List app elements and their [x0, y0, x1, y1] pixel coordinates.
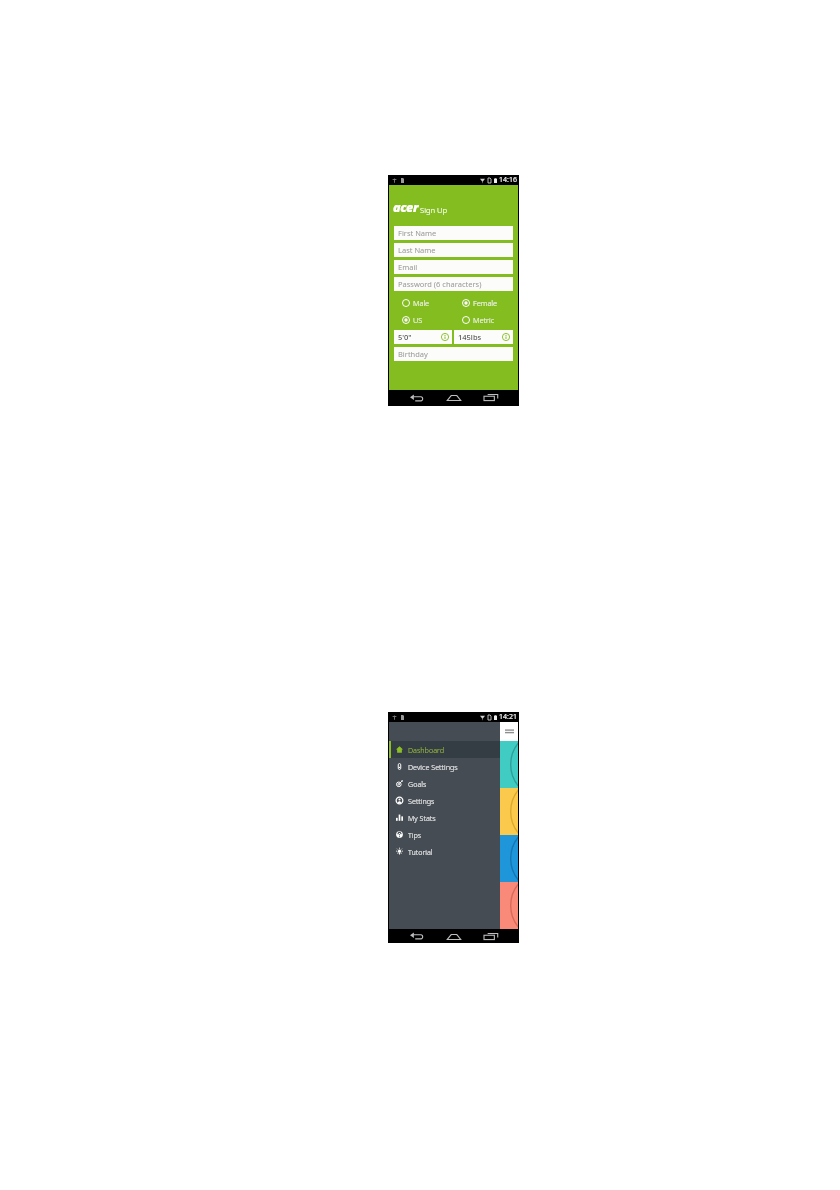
- button[interactable]: Back: [408, 390, 425, 405]
- button[interactable]: Settings: [389, 792, 500, 809]
- staticText: My Stats: [408, 813, 436, 823]
- button[interactable]: 145lbs: [454, 330, 513, 344]
- staticText: Birthday: [398, 349, 428, 359]
- button[interactable]: Open navigation menu: [500, 722, 518, 741]
- button[interactable]: Dashboard card: [500, 788, 518, 835]
- button[interactable]: Recent apps: [482, 929, 499, 943]
- button[interactable]: Password (6 characters): [394, 277, 513, 291]
- button[interactable]: Female: [462, 296, 518, 309]
- staticText: Tips: [408, 830, 422, 840]
- button[interactable]: More info: [441, 333, 449, 341]
- button[interactable]: Metric: [462, 313, 518, 326]
- staticText: 14:21: [499, 712, 517, 722]
- staticText: Password (6 characters): [398, 279, 482, 289]
- staticText: First Name: [398, 228, 437, 238]
- staticText: Email: [398, 262, 418, 272]
- button[interactable]: US: [402, 313, 449, 326]
- button[interactable]: Home: [445, 390, 462, 405]
- button[interactable]: Birthday: [394, 347, 513, 361]
- staticText: Male: [413, 298, 430, 308]
- staticText: Female: [473, 298, 498, 308]
- staticText: Goals: [408, 779, 427, 789]
- button[interactable]: Home: [445, 929, 462, 943]
- staticText: acer: [393, 199, 418, 216]
- button[interactable]: Goals: [389, 775, 500, 792]
- button[interactable]: Male: [402, 296, 449, 309]
- staticText: Dashboard: [408, 745, 444, 755]
- button[interactable]: 5'0": [394, 330, 452, 344]
- staticText: 5'0": [398, 332, 412, 342]
- button[interactable]: Device Settings: [389, 758, 500, 775]
- button[interactable]: Back: [408, 929, 425, 943]
- button[interactable]: First Name: [394, 226, 513, 240]
- staticText: US: [413, 315, 423, 325]
- staticText: Last Name: [398, 245, 436, 255]
- staticText: Settings: [408, 796, 435, 806]
- button[interactable]: Dashboard card: [500, 882, 518, 929]
- button[interactable]: Last Name: [394, 243, 513, 257]
- button[interactable]: More info: [502, 333, 510, 341]
- staticText: Metric: [473, 315, 495, 325]
- staticText: Device Settings: [408, 762, 458, 772]
- staticText: 145lbs: [458, 332, 482, 342]
- staticText: Tutorial: [408, 847, 433, 857]
- button[interactable]: Tutorial: [389, 843, 500, 860]
- button[interactable]: Recent apps: [482, 390, 499, 405]
- staticText: Sign Up: [420, 205, 447, 215]
- button[interactable]: Dashboard card: [500, 835, 518, 882]
- button[interactable]: My Stats: [389, 809, 500, 826]
- button[interactable]: Email: [394, 260, 513, 274]
- button[interactable]: Dashboard: [389, 741, 500, 758]
- button[interactable]: Tips: [389, 826, 500, 843]
- button[interactable]: Dashboard card: [500, 741, 518, 788]
- staticText: 14:16: [499, 175, 517, 185]
